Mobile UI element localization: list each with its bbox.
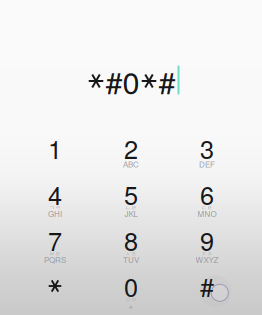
button[interactable]: 6 bbox=[169, 176, 245, 222]
staticText: ㅅㅎ bbox=[125, 249, 137, 258]
staticText: WXYZ bbox=[195, 254, 218, 265]
staticText: JKL bbox=[124, 208, 137, 219]
staticText: 7 bbox=[48, 222, 62, 258]
staticText: 3 bbox=[200, 130, 214, 166]
staticText: # bbox=[200, 268, 214, 304]
staticText: 6 bbox=[200, 176, 214, 212]
button[interactable]: star bbox=[17, 268, 93, 314]
staticText: 4 bbox=[48, 176, 62, 212]
button[interactable]: 2 bbox=[93, 130, 169, 176]
staticText: # bbox=[158, 59, 175, 103]
staticText: 9 bbox=[200, 222, 214, 258]
staticText: ABC bbox=[123, 158, 139, 170]
staticText: ㄷㅌ bbox=[201, 203, 213, 212]
staticText: GHI bbox=[48, 208, 62, 219]
staticText: #0 bbox=[105, 59, 139, 103]
button[interactable]: pound bbox=[169, 268, 245, 314]
button[interactable]: 0 bbox=[93, 268, 169, 314]
staticText: TUV bbox=[123, 254, 139, 265]
staticText: 0 bbox=[124, 268, 138, 304]
button[interactable]: 7 bbox=[17, 222, 93, 268]
staticText: ㅇㅁ bbox=[125, 295, 137, 304]
staticText: DEF bbox=[199, 158, 215, 170]
staticText: PQRS bbox=[44, 254, 66, 265]
staticText: ㄴㄹ bbox=[125, 203, 137, 212]
staticText: ㄱㅋ bbox=[49, 203, 61, 212]
staticText: ㅈㅊ bbox=[201, 249, 213, 258]
staticText: 1 bbox=[48, 130, 62, 166]
staticText: ㅂㅍ bbox=[49, 249, 61, 258]
staticText: MNO bbox=[197, 208, 216, 219]
staticText: 8 bbox=[124, 222, 138, 258]
button[interactable]: 8 bbox=[93, 222, 169, 268]
staticText: + bbox=[128, 300, 133, 311]
staticText: 2 bbox=[124, 130, 138, 166]
button[interactable]: 9 bbox=[169, 222, 245, 268]
button[interactable]: 4 bbox=[17, 176, 93, 222]
button[interactable]: 5 bbox=[93, 176, 169, 222]
button[interactable]: 3 bbox=[169, 130, 245, 176]
button[interactable]: 1 bbox=[17, 130, 93, 176]
staticText: 5 bbox=[124, 176, 138, 212]
